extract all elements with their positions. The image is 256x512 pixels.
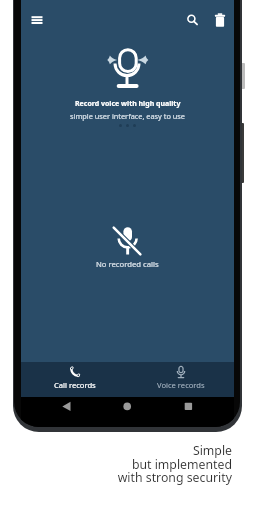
staticText: Voice records [157, 380, 205, 390]
staticText: Record voice with high quality [75, 99, 181, 109]
staticText: Simple but implemented with strong secur… [28, 442, 232, 485]
staticText: Call records [54, 380, 96, 390]
button[interactable]: Delete [209, 9, 231, 31]
button[interactable]: Search [181, 9, 203, 31]
button[interactable]: Voice records [133, 362, 229, 397]
button[interactable]: Call records [27, 362, 123, 397]
staticText: No recorded calls [96, 259, 159, 269]
button[interactable]: Menu [26, 9, 48, 31]
staticText: simple user interface, easy to use [70, 111, 185, 121]
